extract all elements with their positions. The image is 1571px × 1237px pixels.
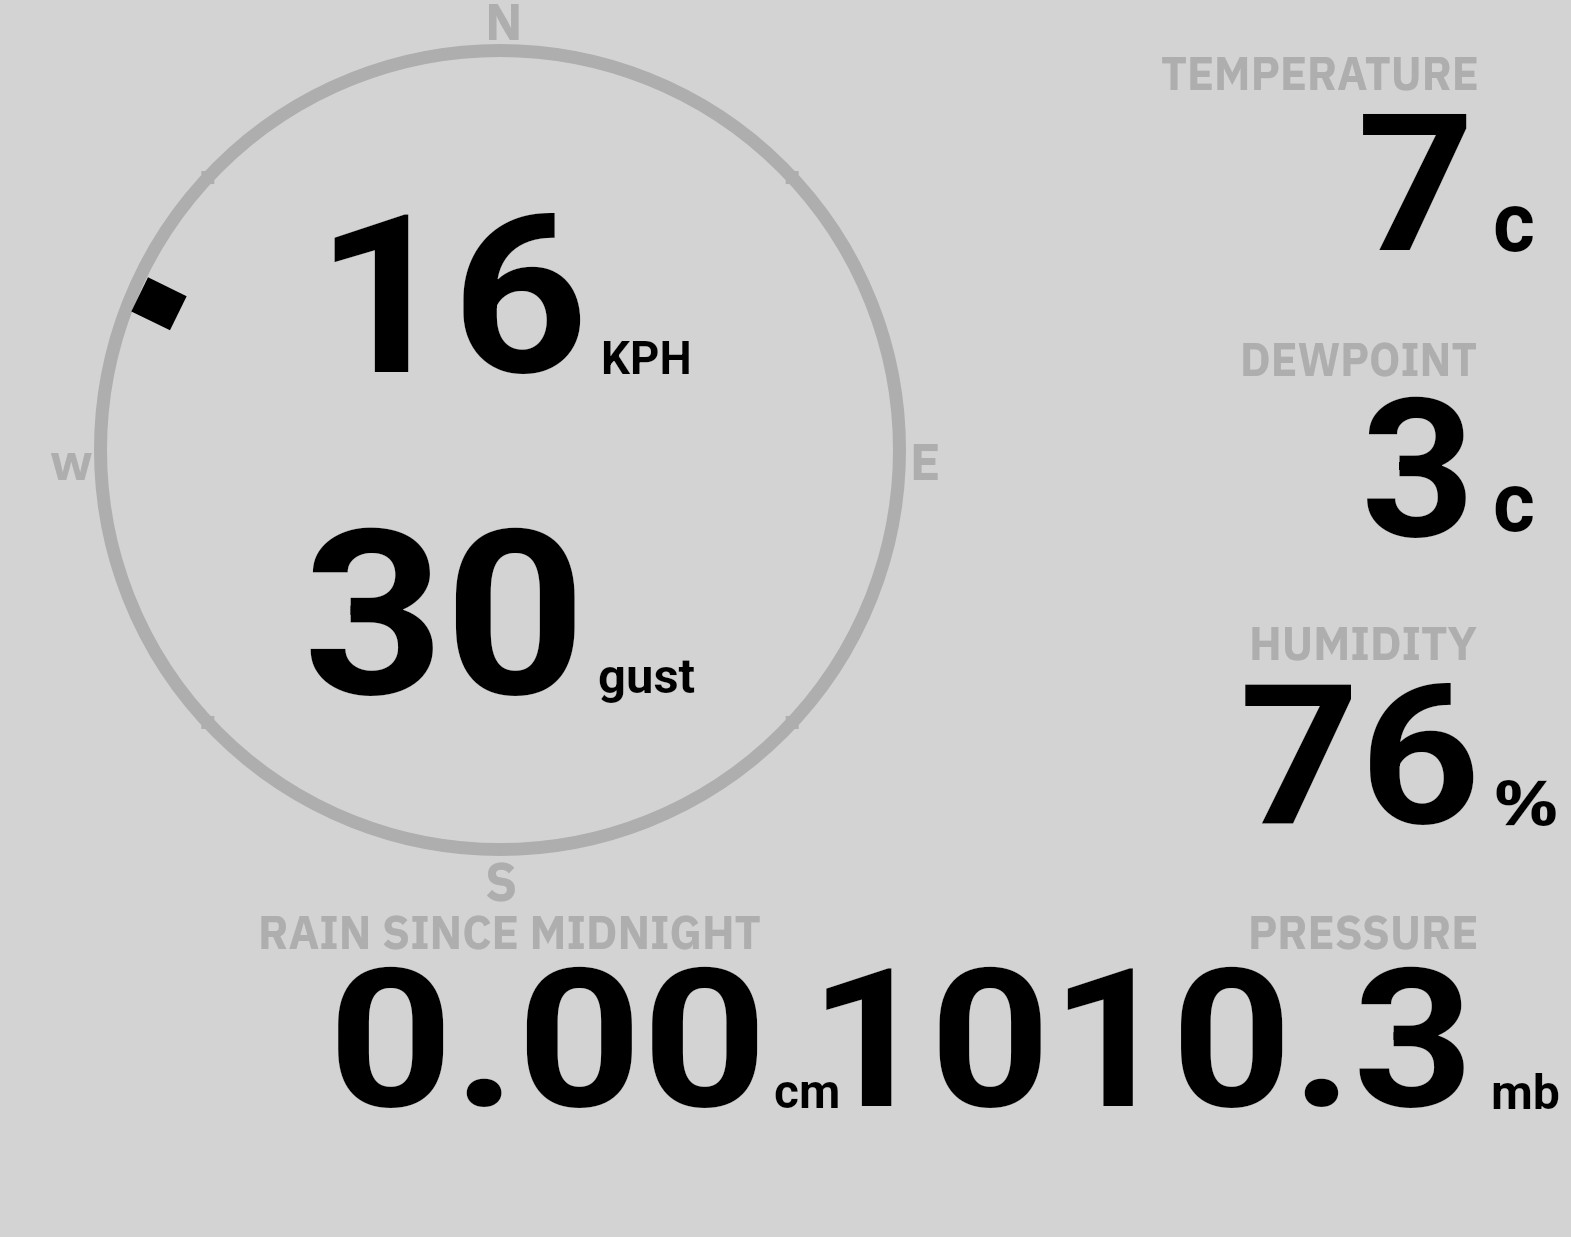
staticText: w (50, 427, 93, 495)
staticText: cm (774, 1064, 841, 1120)
button[interactable]: Temperature 7 degrees celsius (1100, 20, 1571, 290)
button[interactable]: Rain since midnight 0.00 cm (240, 890, 840, 1130)
staticText: 16 (315, 167, 589, 426)
button[interactable]: Dew point 3 degrees celsius (1100, 300, 1571, 580)
staticText: S (485, 845, 517, 916)
staticText: 30 (303, 481, 586, 750)
button[interactable]: Wind 16 KPH, gusting 30, from west north… (90, 40, 910, 860)
staticText: mb (1491, 1064, 1561, 1121)
button[interactable]: Pressure 1010.3 millibars (850, 890, 1571, 1130)
staticText: RAIN SINCE MIDNIGHT (258, 902, 762, 962)
staticText: 7 (1357, 73, 1475, 297)
staticText: 76 (1239, 642, 1481, 871)
staticText: TEMPERATURE (1161, 43, 1479, 102)
staticText: 1010.3 (809, 926, 1474, 1153)
staticText: DEWPOINT (1240, 329, 1477, 389)
staticText: PRESSURE (1248, 902, 1479, 962)
staticText: KPH (601, 332, 692, 385)
staticText: % (1493, 761, 1559, 842)
button[interactable]: Humidity 76 percent (1100, 590, 1571, 870)
staticText: N (485, 0, 523, 54)
staticText: c (1493, 454, 1536, 551)
staticText: c (1493, 174, 1536, 271)
staticText: HUMIDITY (1249, 613, 1477, 673)
staticText: E (910, 427, 941, 494)
staticText: 3 (1361, 357, 1475, 583)
staticText: gust (598, 648, 696, 705)
staticText: 0.00 (328, 926, 768, 1153)
